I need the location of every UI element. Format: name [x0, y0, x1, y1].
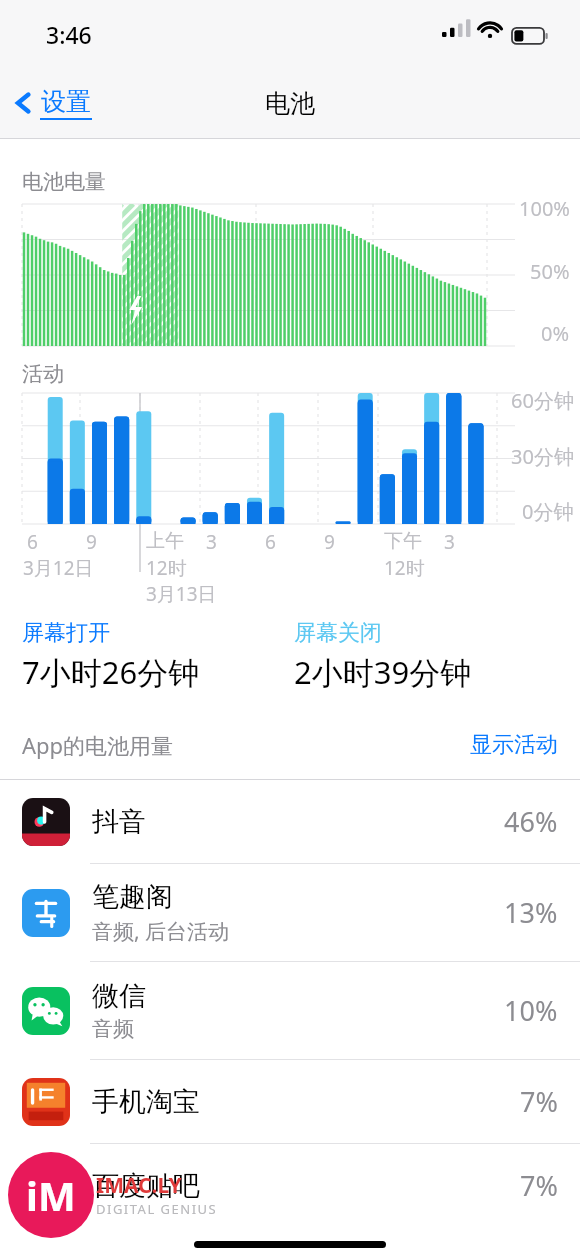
staticText: 3	[444, 529, 455, 555]
button[interactable]: 微信	[0, 962, 580, 1059]
staticText: DIGITAL GENIUS	[96, 1200, 218, 1218]
staticText: 7小时26分钟	[22, 651, 200, 693]
button[interactable]: 显示活动	[448, 727, 580, 763]
staticText: App的电池用量	[22, 730, 174, 760]
staticText: 笔趣阁	[92, 880, 173, 914]
staticText: 6	[265, 529, 276, 555]
staticText: 屏幕关闭	[294, 619, 382, 647]
staticText: 上午	[146, 529, 184, 553]
staticText: 抖音	[92, 805, 146, 839]
staticText: 0%	[541, 320, 570, 347]
staticText: 7%	[520, 1167, 558, 1204]
staticText: 百度贴吧	[92, 1169, 200, 1203]
staticText: 3	[206, 529, 217, 555]
button[interactable]: 笔趣阁	[0, 864, 580, 961]
staticText: iM	[26, 1168, 76, 1222]
staticText: 微信	[92, 979, 146, 1013]
staticText: 100%	[519, 195, 570, 222]
staticText: 13%	[504, 894, 558, 931]
staticText: 12时	[384, 555, 425, 581]
button[interactable]: 设置	[0, 80, 100, 126]
staticText: 音频	[92, 1016, 134, 1042]
staticText: 下午	[384, 529, 422, 553]
staticText: 手机淘宝	[92, 1085, 200, 1119]
staticText: 音频, 后台活动	[92, 917, 230, 946]
staticText: 3月13日	[146, 581, 217, 607]
staticText: 9	[86, 529, 97, 555]
staticText: 50%	[530, 258, 570, 285]
staticText: 设置	[41, 86, 91, 117]
staticText: 10%	[504, 992, 558, 1029]
staticText: 12时	[146, 555, 187, 581]
staticText: 3月12日	[23, 555, 94, 581]
button[interactable]: 抖音	[0, 780, 580, 863]
staticText: 6	[27, 529, 38, 555]
staticText: 显示活动	[470, 731, 558, 759]
staticText: 9	[324, 529, 335, 555]
staticText: IMAC.LY	[96, 1171, 182, 1200]
button[interactable]: 百度贴吧	[0, 1144, 580, 1227]
staticText: 60分钟	[511, 387, 574, 414]
staticText: 电池电量	[22, 169, 106, 195]
staticText: 7%	[520, 1083, 558, 1120]
staticText: 46%	[504, 803, 558, 840]
staticText: 屏幕打开	[22, 619, 110, 647]
staticText: 0分钟	[522, 498, 574, 525]
button[interactable]: 手机淘宝	[0, 1060, 580, 1143]
staticText: 3:46	[46, 19, 92, 50]
staticText: 30分钟	[511, 443, 574, 470]
staticText: 电池	[265, 88, 315, 119]
staticText: 活动	[22, 361, 64, 387]
staticText: 2小时39分钟	[294, 651, 472, 693]
